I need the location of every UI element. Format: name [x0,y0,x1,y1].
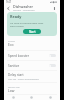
staticText: Dishwasher [13,4,34,9]
staticText: Delay start [8,73,24,77]
staticText: CYCLE [8,39,15,42]
staticText: Kitchen · Connected [13,9,35,12]
staticText: RINSE AID [8,85,20,88]
staticText: Door closed [10,24,24,27]
button[interactable]: Delay start [4,71,60,82]
button[interactable]: More options [51,5,58,12]
button[interactable]: RINSE AID [4,83,60,94]
staticText: Eco [8,42,14,47]
staticText: Speed booster [8,54,49,58]
button[interactable]: CYCLE [4,36,60,50]
staticText: 9:41 [6,0,12,4]
button[interactable]: Speed booster [4,51,60,60]
button[interactable]: Start [23,29,41,34]
button[interactable]: Back [4,4,12,12]
button[interactable]: Back [4,95,22,100]
staticText: Not set · starts immediately [8,77,39,80]
staticText: No cycle is running right now. [10,21,44,24]
staticText: Low [8,88,15,93]
staticText: Sanitize [8,64,49,68]
button[interactable]: Recents [41,95,60,100]
staticText: Start [29,30,36,34]
button[interactable]: Home [22,95,41,100]
staticText: Ready [10,14,22,19]
button[interactable]: Sanitize [4,61,60,70]
